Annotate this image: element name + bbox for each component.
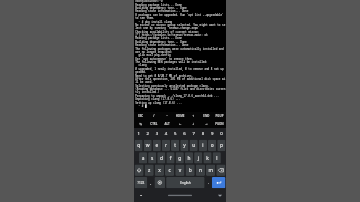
staticText: w <box>146 142 150 149</box>
button[interactable]: f <box>166 152 175 163</box>
button[interactable]: y <box>180 140 189 151</box>
staticText: − <box>166 114 168 118</box>
staticText: → <box>205 122 208 126</box>
button[interactable]: 7 <box>189 128 198 139</box>
button[interactable]: u <box>189 140 198 151</box>
button[interactable]: Enter <box>212 177 225 188</box>
staticText: English <box>180 180 191 185</box>
button[interactable]: m <box>206 164 215 176</box>
staticText: ↹ <box>139 122 142 126</box>
staticText: HOME <box>176 114 184 118</box>
staticText: j <box>198 155 199 161</box>
staticText: ESC <box>138 114 143 118</box>
staticText: PGDN <box>215 122 224 126</box>
staticText: CTRL <box>150 122 157 126</box>
button[interactable]: t <box>171 140 179 151</box>
staticText: i <box>202 142 204 149</box>
staticText: g <box>178 155 181 161</box>
button[interactable]: 3 <box>152 128 161 139</box>
button[interactable]: ?123 <box>134 177 147 188</box>
button[interactable]: 9 <box>207 128 217 139</box>
button[interactable]: 8 <box>198 128 208 139</box>
staticText: u <box>192 142 195 149</box>
button[interactable]: h <box>185 152 193 163</box>
button[interactable]: p <box>217 140 226 151</box>
button[interactable]: o <box>208 140 216 151</box>
button[interactable]: Back <box>137 192 144 199</box>
button[interactable]: PGUP <box>213 112 226 120</box>
staticText: q <box>137 142 140 149</box>
button[interactable]: , <box>148 176 154 189</box>
staticText: 3 <box>156 131 158 137</box>
button[interactable]: . <box>205 176 211 189</box>
button[interactable]: s <box>148 152 156 163</box>
staticText: m <box>208 167 213 173</box>
button[interactable]: w <box>144 140 152 151</box>
staticText: s <box>151 155 153 161</box>
staticText: root@localhost:~# Reading package lists.… <box>135 0 225 108</box>
button[interactable]: → <box>200 120 213 128</box>
staticText: 2 <box>146 131 149 137</box>
button[interactable]: Backspace <box>216 164 226 176</box>
staticText: 8 <box>202 131 204 137</box>
staticText: t <box>174 142 176 149</box>
staticText: n <box>199 167 202 173</box>
staticText: 5 <box>174 131 176 137</box>
staticText: z <box>148 167 150 173</box>
button[interactable]: 1 <box>134 128 143 139</box>
button[interactable]: r <box>162 140 170 151</box>
button[interactable]: d <box>157 152 165 163</box>
button[interactable]: b <box>185 164 195 176</box>
staticText: 4 <box>165 131 167 137</box>
button[interactable]: z <box>145 164 154 176</box>
button[interactable]: i <box>199 140 207 151</box>
button[interactable]: g <box>176 152 184 163</box>
staticText: y <box>183 142 186 149</box>
button[interactable]: ↓ <box>187 120 200 128</box>
button[interactable]: j <box>194 152 202 163</box>
button[interactable]: 6 <box>180 128 189 139</box>
staticText: ↑ <box>192 114 194 118</box>
staticText: f <box>170 155 171 161</box>
button[interactable]: e <box>153 140 161 151</box>
button[interactable]: Emoji <box>154 177 165 188</box>
staticText: v <box>179 167 181 173</box>
button[interactable]: k <box>203 152 212 163</box>
button[interactable]: x <box>155 164 164 176</box>
button[interactable]: Shift <box>134 164 144 176</box>
button[interactable]: END <box>200 112 213 120</box>
button[interactable]: English <box>166 177 205 188</box>
button[interactable]: 5 <box>170 128 180 139</box>
button[interactable]: CTRL <box>147 120 160 128</box>
button[interactable]: 2 <box>143 128 152 139</box>
button[interactable]: PGDN <box>213 120 226 128</box>
button[interactable]: Hide keyboard <box>216 192 223 199</box>
button[interactable]: HOME <box>173 112 187 120</box>
button[interactable]: ← <box>173 120 187 128</box>
staticText: , <box>150 180 152 186</box>
staticText: ↓ <box>192 122 194 126</box>
staticText: ?123 <box>137 180 144 185</box>
staticText: 7 <box>192 131 195 137</box>
button[interactable]: ESC <box>134 112 147 120</box>
staticText: l <box>216 155 217 161</box>
staticText: . <box>208 180 209 186</box>
staticText: ← <box>179 122 181 126</box>
staticText: END <box>203 114 209 118</box>
staticText: o <box>211 142 214 149</box>
button[interactable]: v <box>175 164 185 176</box>
button[interactable]: / <box>147 112 160 120</box>
button[interactable]: 0 <box>217 128 226 139</box>
button[interactable]: n <box>196 164 205 176</box>
staticText: h <box>187 155 190 161</box>
button[interactable]: ↑ <box>187 112 200 120</box>
button[interactable]: l <box>213 152 221 163</box>
button[interactable]: 4 <box>161 128 170 139</box>
button[interactable]: q <box>134 140 143 151</box>
button[interactable]: − <box>160 112 173 120</box>
button[interactable]: ALT <box>160 120 173 128</box>
button[interactable]: c <box>165 164 174 176</box>
button[interactable]: a <box>139 152 147 163</box>
staticText: e <box>155 142 158 149</box>
button[interactable]: ↹ <box>134 120 147 128</box>
